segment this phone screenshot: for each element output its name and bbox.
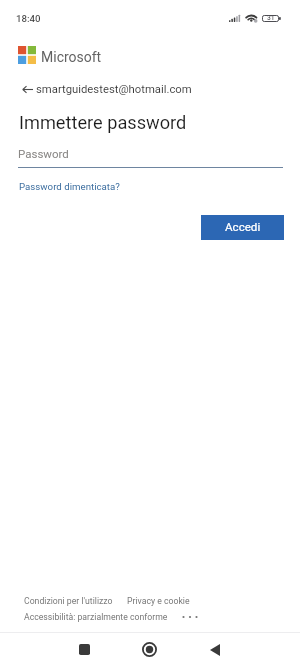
button[interactable]: Back xyxy=(200,635,230,665)
button[interactable]: Password xyxy=(18,145,283,168)
button[interactable]: Recent apps xyxy=(69,634,99,664)
staticText: 18:40 xyxy=(16,13,41,24)
staticText: 31 xyxy=(267,14,275,22)
button[interactable]: More options xyxy=(182,613,198,621)
staticText: Immettere password xyxy=(19,112,187,133)
button[interactable]: Privacy e cookie xyxy=(127,596,190,606)
button[interactable]: Password dimenticata? xyxy=(19,181,120,192)
button[interactable]: Home xyxy=(134,634,164,664)
staticText: smartguidestest@hotmail.com xyxy=(36,83,192,96)
button[interactable]: Accessibilità: parzialmente conforme xyxy=(24,612,168,622)
button[interactable]: Microsoft xyxy=(18,46,102,64)
button[interactable]: Condizioni per l'utilizzo xyxy=(24,596,113,606)
button[interactable]: smartguidestest@hotmail.com xyxy=(22,83,192,96)
staticText: Accedi xyxy=(225,220,261,234)
button[interactable]: Accedi xyxy=(201,215,284,240)
staticText: Password xyxy=(18,147,69,160)
staticText: Microsoft xyxy=(41,49,102,65)
